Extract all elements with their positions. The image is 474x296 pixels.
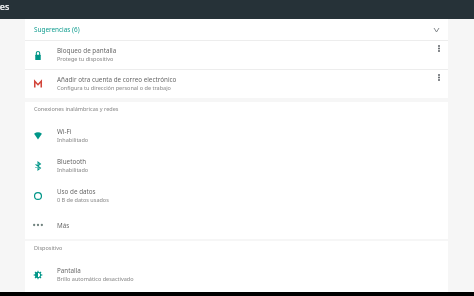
- staticText: Añadir otra cuenta de correo electrónico: [57, 75, 177, 84]
- staticText: Inhabilitado: [57, 166, 89, 173]
- staticText: Sugerencias (6): [34, 25, 80, 34]
- staticText: Wi-Fi: [57, 127, 72, 136]
- staticText: Protege tu dispositivo: [57, 55, 114, 62]
- button[interactable]: Uso de datos: [25, 181, 448, 211]
- button[interactable]: Más: [25, 211, 448, 239]
- button[interactable]: Contraer sugerencias: [424, 19, 448, 40]
- button[interactable]: Bloqueo de pantalla: [25, 41, 448, 69]
- staticText: Ajustes: [0, 0, 10, 12]
- button[interactable]: Añadir otra cuenta de correo electrónico: [25, 70, 448, 98]
- staticText: Más: [57, 221, 70, 230]
- staticText: Configura tu dirección personal o de tra…: [57, 84, 171, 91]
- button[interactable]: Bluetooth: [25, 151, 448, 181]
- staticText: 0 B de datos usados: [57, 196, 109, 203]
- button[interactable]: Más opciones: [430, 41, 448, 69]
- staticText: Bloqueo de pantalla: [57, 46, 117, 55]
- staticText: Bluetooth: [57, 157, 87, 166]
- button[interactable]: Más opciones: [430, 70, 448, 98]
- button[interactable]: Pantalla: [25, 260, 448, 290]
- button[interactable]: Wi-Fi: [25, 121, 448, 151]
- button[interactable]: Sugerencias (6): [25, 19, 448, 40]
- staticText: Dispositivo: [34, 244, 63, 251]
- staticText: Inhabilitado: [57, 136, 89, 143]
- staticText: Pantalla: [57, 266, 81, 275]
- staticText: Conexiones inalámbricas y redes: [34, 105, 119, 112]
- staticText: Brillo automático desactivado: [57, 275, 134, 282]
- staticText: Uso de datos: [57, 187, 96, 196]
